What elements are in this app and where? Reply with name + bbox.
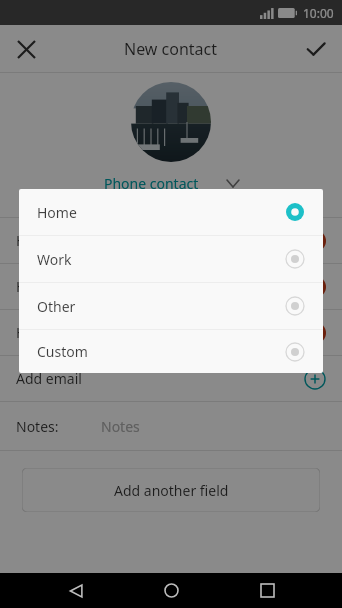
staticText: Add another field — [114, 481, 229, 500]
button[interactable]: Close — [8, 31, 44, 67]
staticText: Home — [16, 231, 56, 250]
other: Add email — [304, 368, 326, 390]
button[interactable]: Remove — [304, 230, 326, 252]
button[interactable]: Remove — [304, 322, 326, 344]
button[interactable]: Home — [151, 573, 191, 608]
button[interactable]: Back — [56, 573, 96, 608]
button[interactable]: Other — [37, 283, 305, 329]
staticText: Home — [37, 203, 285, 222]
staticText: Add email — [16, 369, 82, 388]
button[interactable]: Home — [37, 189, 305, 235]
button[interactable]: Home — [16, 264, 326, 309]
staticText: Other — [37, 297, 285, 316]
button[interactable]: Home — [16, 218, 326, 263]
staticText: Home — [16, 277, 56, 296]
button[interactable]: Contact photo — [131, 82, 211, 162]
button[interactable]: Work — [37, 236, 305, 282]
staticText: Work — [37, 250, 285, 269]
button[interactable]: Custom — [37, 330, 305, 373]
button[interactable]: Recent apps — [247, 573, 287, 608]
staticText: 10:00 — [303, 5, 334, 21]
staticText: Notes — [101, 417, 140, 436]
button[interactable]: Save — [298, 31, 334, 67]
button[interactable]: Notes: — [16, 402, 326, 450]
staticText: Phone contact — [104, 174, 199, 193]
button[interactable]: Phone contact — [0, 174, 342, 193]
staticText: Home — [16, 323, 56, 342]
button[interactable]: Add another field — [22, 468, 320, 512]
staticText: Notes: — [16, 417, 59, 436]
staticText: New contact — [124, 38, 218, 60]
staticText: Custom — [37, 342, 285, 361]
button[interactable]: Home — [16, 310, 326, 355]
button[interactable]: Add email — [16, 356, 326, 401]
button[interactable]: Remove — [304, 276, 326, 298]
